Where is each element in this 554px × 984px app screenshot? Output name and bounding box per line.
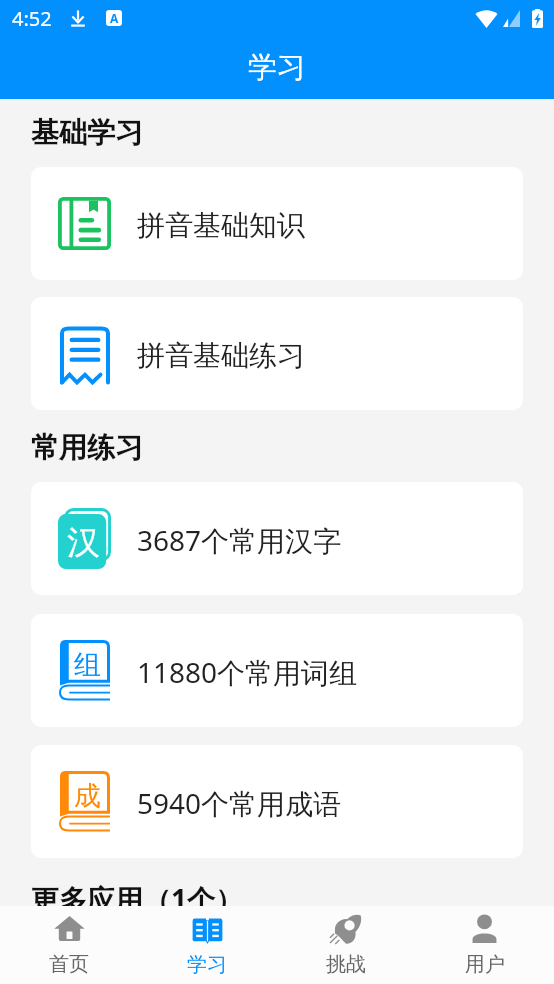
button[interactable]: 组 bbox=[31, 614, 523, 727]
other: 用户 bbox=[469, 913, 500, 944]
staticText: 学习 bbox=[187, 952, 227, 977]
button[interactable]: 用户 bbox=[415, 906, 554, 984]
button[interactable]: 首页 bbox=[0, 906, 138, 984]
button[interactable]: 挑战 bbox=[276, 906, 415, 984]
staticText: A bbox=[110, 10, 119, 26]
staticText: 基础学习 bbox=[31, 115, 143, 150]
staticText: 11880个常用词组 bbox=[137, 653, 358, 691]
button[interactable]: 拼音基础知识 bbox=[31, 167, 523, 280]
staticText: 汉 bbox=[67, 522, 100, 564]
button[interactable]: 汉 bbox=[31, 482, 523, 595]
staticText: 成 bbox=[74, 779, 101, 813]
staticText: 组 bbox=[74, 648, 101, 682]
staticText: 学习 bbox=[248, 49, 306, 86]
staticText: 首页 bbox=[49, 952, 89, 977]
button[interactable]: 拼音基础练习 bbox=[31, 297, 523, 410]
button[interactable]: 成 bbox=[31, 745, 523, 858]
other: 学习 bbox=[192, 913, 223, 944]
staticText: 拼音基础练习 bbox=[137, 338, 305, 373]
other: 挑战 bbox=[330, 913, 361, 944]
staticText: 用户 bbox=[465, 952, 505, 977]
staticText: 4:52 bbox=[12, 5, 52, 32]
staticText: 常用练习 bbox=[31, 430, 143, 465]
staticText: 拼音基础知识 bbox=[137, 208, 305, 243]
button[interactable]: 学习 bbox=[138, 906, 276, 984]
staticText: 5940个常用成语 bbox=[137, 784, 342, 822]
staticText: 更多应用（1个） bbox=[31, 880, 244, 906]
staticText: 3687个常用汉字 bbox=[137, 521, 342, 559]
other: 首页 bbox=[54, 913, 85, 944]
staticText: 挑战 bbox=[326, 952, 366, 977]
